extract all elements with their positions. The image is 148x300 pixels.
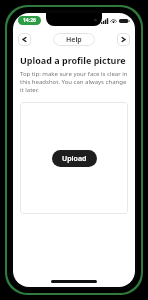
button[interactable]: Upload — [52, 150, 97, 167]
staticText: Upload — [62, 154, 87, 164]
staticText: Top tip: make sure your face is clear in… — [20, 70, 128, 94]
staticText: 14:26 — [23, 17, 36, 24]
staticText: Upload a profile picture — [20, 54, 126, 66]
button[interactable]: Back — [18, 33, 31, 46]
staticText: Help — [66, 35, 82, 45]
button[interactable]: Help — [53, 33, 95, 46]
button[interactable]: Forward — [117, 33, 130, 46]
